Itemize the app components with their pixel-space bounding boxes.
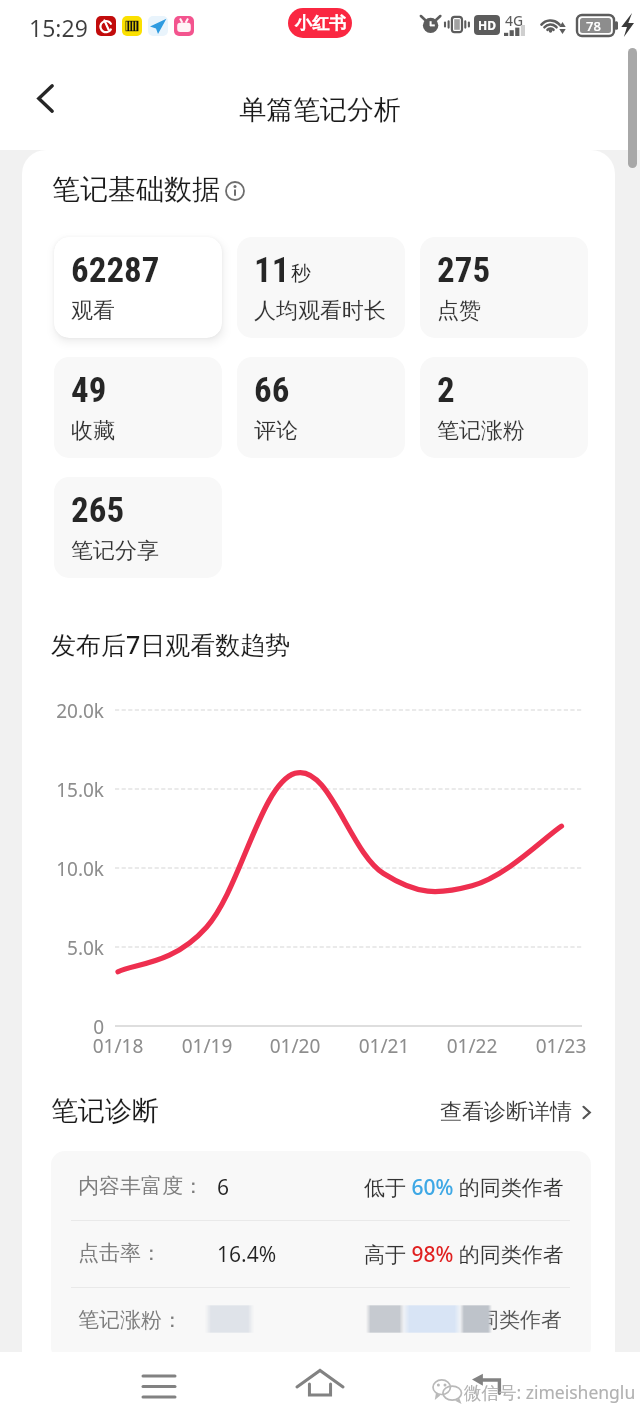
staticText: 01/23: [521, 1033, 601, 1059]
staticText: HD: [478, 17, 496, 33]
staticText: 小红书: [295, 13, 346, 34]
staticText: 笔记涨粉：: [78, 1307, 183, 1333]
button[interactable]: Back: [21, 74, 69, 122]
staticText: 265: [71, 490, 125, 531]
staticText: 观看: [71, 297, 115, 325]
staticText: 15:29: [29, 12, 88, 43]
staticText: 6: [217, 1173, 230, 1202]
staticText: 275: [437, 250, 491, 291]
staticText: 笔记涨粉: [437, 417, 525, 445]
button[interactable]: Back: [460, 1356, 516, 1412]
staticText: 同类作者: [478, 1307, 562, 1333]
button[interactable]: Home: [292, 1355, 348, 1411]
staticText: 笔记基础数据: [52, 172, 220, 207]
staticText: 5.0k: [52, 935, 104, 961]
button[interactable]: 11: [237, 237, 405, 338]
staticText: 16.4%: [217, 1240, 277, 1269]
button[interactable]: 点击率：: [51, 1218, 591, 1285]
staticText: 秒: [291, 261, 311, 286]
button[interactable]: Info: [225, 181, 245, 201]
button[interactable]: 66: [237, 357, 405, 458]
staticText: 78: [586, 17, 601, 35]
staticText: 01/19: [167, 1033, 247, 1059]
staticText: 点击率：: [78, 1240, 162, 1266]
staticText: 高于 98% 的同类作者: [364, 1240, 564, 1269]
staticText: 微信号: zimeishenglu: [464, 1380, 636, 1404]
staticText: 10.0k: [52, 856, 104, 882]
staticText: 发布后7日观看数趋势: [51, 627, 291, 661]
staticText: 笔记诊断: [51, 1094, 159, 1128]
staticText: 4G: [505, 11, 524, 30]
button[interactable]: 275: [420, 237, 588, 338]
staticText: 15.0k: [52, 777, 104, 803]
staticText: 内容丰富度：: [78, 1173, 204, 1199]
staticText: 49: [71, 370, 107, 411]
staticText: 62287: [71, 250, 160, 291]
button[interactable]: 2: [420, 357, 588, 458]
staticText: 2: [437, 370, 455, 411]
staticText: 人均观看时长: [254, 297, 386, 325]
staticText: 01/18: [78, 1033, 158, 1059]
staticText: 01/21: [344, 1033, 424, 1059]
staticText: 点赞: [437, 297, 481, 325]
button[interactable]: Recent apps: [131, 1358, 187, 1414]
staticText: 单篇笔记分析: [239, 93, 401, 127]
button[interactable]: 内容丰富度：: [51, 1151, 591, 1218]
staticText: 查看诊断详情: [440, 1098, 572, 1126]
button[interactable]: 62287: [54, 237, 222, 338]
button[interactable]: 查看诊断详情: [440, 1098, 594, 1126]
staticText: 笔记分享: [71, 537, 159, 565]
staticText: 评论: [254, 417, 298, 445]
staticText: 0: [52, 1014, 104, 1040]
button[interactable]: 265: [54, 477, 222, 578]
staticText: 01/22: [432, 1033, 512, 1059]
button[interactable]: 49: [54, 357, 222, 458]
staticText: 低于 60% 的同类作者: [364, 1173, 564, 1202]
staticText: 11: [254, 250, 290, 291]
staticText: 收藏: [71, 417, 115, 445]
staticText: 20.0k: [52, 698, 104, 724]
staticText: 01/20: [255, 1033, 335, 1059]
staticText: 66: [254, 370, 290, 411]
